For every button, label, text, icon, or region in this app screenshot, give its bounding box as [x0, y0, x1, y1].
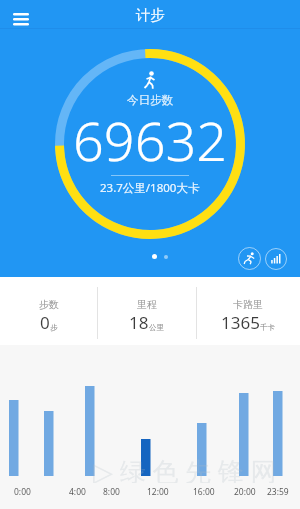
- staticText: 步数: [39, 298, 59, 311]
- staticText: 0: [40, 311, 50, 334]
- button[interactable]: 里程: [97, 298, 196, 340]
- staticText: 步: [50, 323, 58, 332]
- staticText: 卡路里: [233, 298, 263, 311]
- staticText: 8:00: [103, 486, 120, 498]
- staticText: 16:00: [193, 486, 215, 498]
- button[interactable]: [238, 247, 261, 270]
- staticText: 计步: [136, 6, 165, 24]
- staticText: 20:00: [234, 486, 256, 498]
- staticText: 69632: [73, 103, 228, 173]
- staticText: 4:00: [69, 486, 86, 498]
- button[interactable]: 卡路里: [196, 298, 300, 340]
- button[interactable]: 步数: [0, 298, 97, 340]
- staticText: 0:00: [14, 486, 31, 498]
- staticText: 里程: [137, 298, 157, 311]
- staticText: 23.7公里/1800大卡: [100, 180, 200, 196]
- staticText: 千卡: [260, 323, 275, 332]
- button[interactable]: [265, 248, 287, 270]
- button[interactable]: [7, 7, 35, 31]
- staticText: ▷ 绿 色 先 锋 网: [93, 453, 277, 483]
- staticText: 18: [129, 311, 149, 334]
- staticText: 12:00: [147, 486, 169, 498]
- staticText: 公里: [149, 323, 164, 332]
- staticText: 23:59: [267, 486, 289, 498]
- staticText: 今日步数: [127, 93, 173, 107]
- staticText: 1365: [221, 311, 260, 334]
